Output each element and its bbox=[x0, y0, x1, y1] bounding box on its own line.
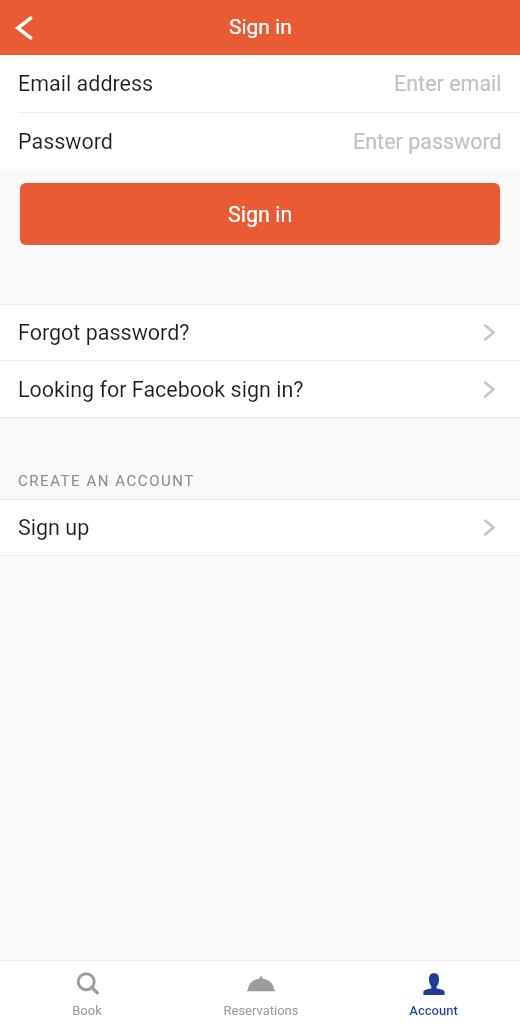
button[interactable]: Looking for Facebook sign in? bbox=[0, 361, 520, 417]
button[interactable]: Password bbox=[0, 113, 520, 169]
button[interactable]: Email address bbox=[0, 55, 520, 112]
staticText: Sign in bbox=[229, 15, 292, 40]
staticText: Sign in bbox=[228, 202, 293, 227]
staticText: Sign up bbox=[18, 515, 90, 540]
button[interactable]: Forgot password? bbox=[0, 305, 520, 360]
staticText: Book bbox=[72, 1003, 102, 1018]
staticText: Enter password bbox=[353, 129, 502, 154]
button[interactable]: Sign up bbox=[0, 500, 520, 555]
button[interactable]: Book bbox=[0, 963, 174, 1023]
staticText: CREATE AN ACCOUNT bbox=[18, 472, 195, 490]
staticText: Enter email bbox=[394, 71, 502, 96]
button[interactable]: Back bbox=[0, 4, 48, 52]
staticText: Password bbox=[18, 129, 113, 154]
staticText: Account bbox=[409, 1003, 458, 1018]
staticText: Reservations bbox=[223, 1003, 299, 1018]
button[interactable]: Sign in bbox=[20, 183, 500, 245]
button[interactable]: Reservations bbox=[174, 963, 347, 1023]
button[interactable]: Account bbox=[347, 963, 520, 1023]
staticText: Forgot password? bbox=[18, 320, 190, 345]
staticText: Looking for Facebook sign in? bbox=[18, 377, 304, 402]
staticText: Email address bbox=[18, 71, 154, 96]
